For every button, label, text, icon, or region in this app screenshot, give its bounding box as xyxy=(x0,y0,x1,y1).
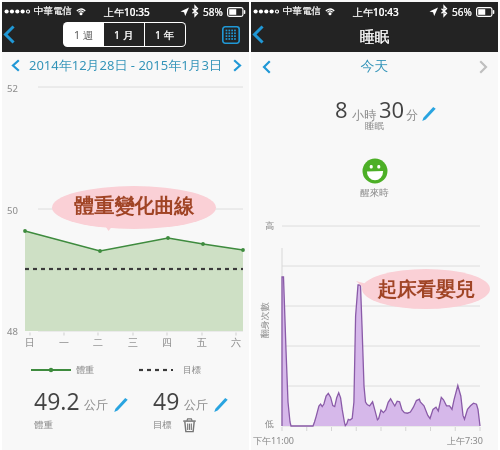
button[interactable]: Delete xyxy=(181,416,198,433)
staticText: 日 xyxy=(20,336,40,349)
staticText: 翻身次數 xyxy=(258,302,269,338)
button[interactable]: Next day xyxy=(474,57,492,77)
staticText: 58% xyxy=(203,5,223,19)
button[interactable]: Edit xyxy=(421,106,436,121)
staticText: 體重變化曲線 xyxy=(52,194,216,219)
staticText: 一 xyxy=(54,336,74,349)
staticText: 中華電信 xyxy=(283,5,321,17)
staticText: 1 年 xyxy=(155,28,175,42)
button[interactable]: 1 週 xyxy=(64,23,103,46)
staticText: 體重 xyxy=(34,419,53,431)
staticText: 醒來時 xyxy=(251,187,498,199)
staticText: 體重 xyxy=(76,364,94,375)
staticText: 分 xyxy=(406,107,418,122)
staticText: 50 xyxy=(7,204,18,217)
button[interactable]: Edit xyxy=(213,397,228,412)
staticText: 今天 xyxy=(251,58,498,76)
staticText: 30 xyxy=(379,94,405,124)
staticText: 五 xyxy=(192,336,212,349)
staticText: 低 xyxy=(265,418,274,429)
staticText: 小時 xyxy=(352,107,376,122)
button[interactable]: Next week xyxy=(228,55,246,75)
button[interactable]: Previous day xyxy=(257,57,275,77)
staticText: 目標 xyxy=(153,419,172,431)
button[interactable]: Back xyxy=(247,21,269,47)
staticText: 2014年12月28日 - 2015年1月3日 xyxy=(24,56,227,74)
staticText: 二 xyxy=(88,336,108,349)
staticText: 四 xyxy=(157,336,177,349)
staticText: 49.2 xyxy=(34,385,80,416)
staticText: 六 xyxy=(226,336,246,349)
button[interactable]: Calendar xyxy=(220,24,241,45)
staticText: 起床看嬰兒 xyxy=(362,277,490,302)
staticText: 上午10:35 xyxy=(104,5,150,19)
staticText: 下午11:00 xyxy=(253,434,295,446)
button[interactable]: Previous week xyxy=(6,55,24,75)
button[interactable]: 1 年 xyxy=(145,23,185,46)
staticText: 1 月 xyxy=(114,28,134,42)
staticText: 1 週 xyxy=(74,28,94,42)
staticText: 公斤 xyxy=(184,397,208,412)
staticText: 目標 xyxy=(183,364,201,375)
staticText: 高 xyxy=(265,220,274,231)
staticText: 公斤 xyxy=(84,397,108,412)
staticText: 睡眠 xyxy=(251,120,498,132)
button[interactable]: 1 月 xyxy=(104,23,144,46)
staticText: 三 xyxy=(123,336,143,349)
staticText: 49 xyxy=(153,385,180,416)
staticText: 上午10:43 xyxy=(353,5,399,19)
staticText: 上午7:30 xyxy=(447,434,483,446)
button[interactable]: Edit xyxy=(113,397,128,412)
staticText: 中華電信 xyxy=(34,5,72,17)
staticText: 52 xyxy=(7,82,18,95)
button[interactable]: Back xyxy=(0,21,20,47)
staticText: 睡眠 xyxy=(251,28,498,47)
staticText: 8 xyxy=(335,94,348,124)
staticText: 48 xyxy=(7,325,18,338)
staticText: 56% xyxy=(452,5,472,19)
